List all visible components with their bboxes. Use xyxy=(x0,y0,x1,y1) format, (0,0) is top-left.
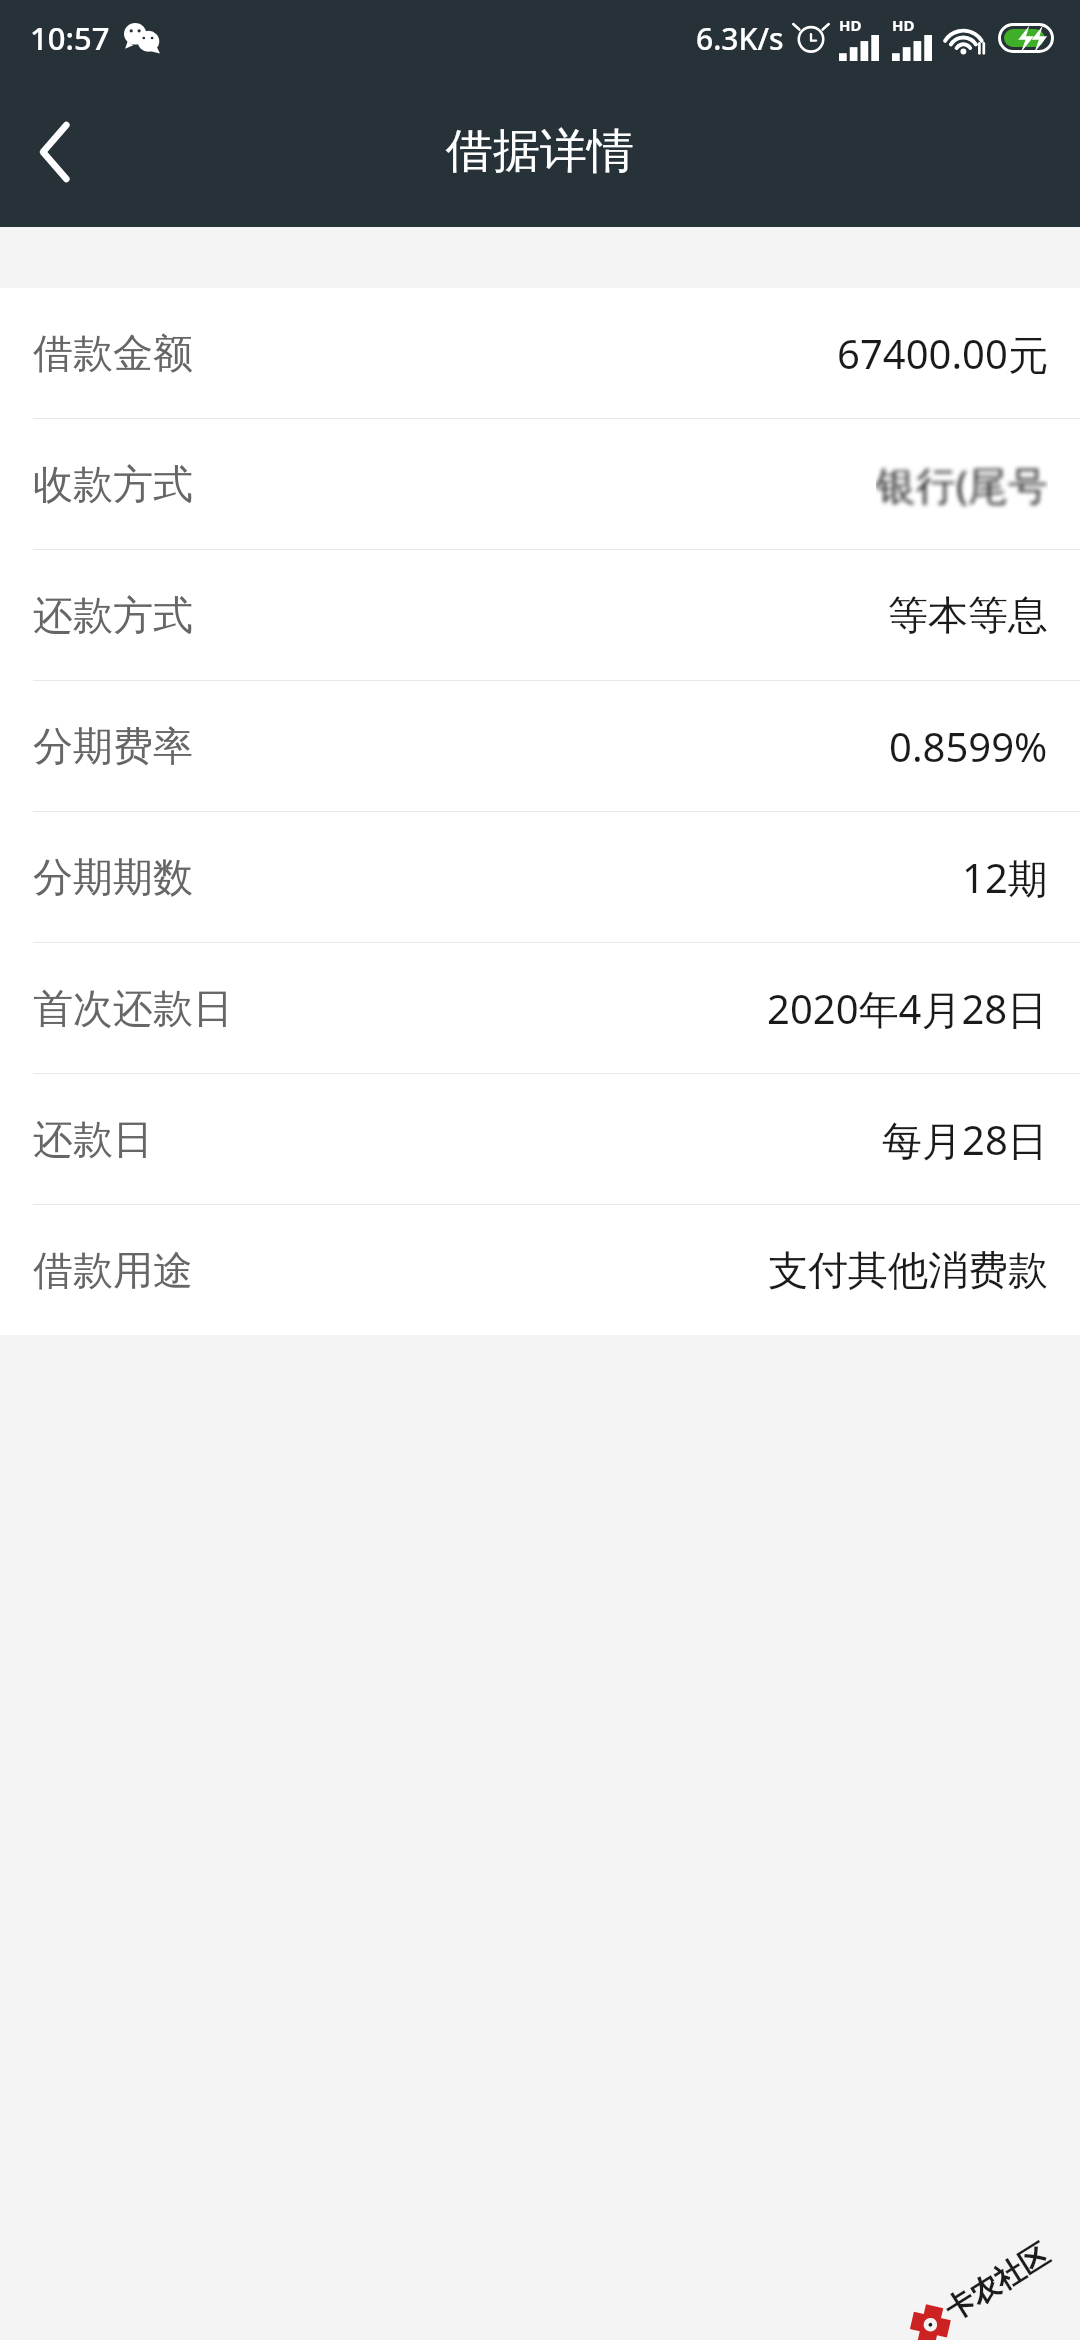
button[interactable]: 返回 xyxy=(0,97,110,207)
staticText: 收款方式 xyxy=(33,459,193,509)
staticText: 0.8599% xyxy=(889,719,1048,773)
button[interactable]: 分期期数 xyxy=(0,812,1080,942)
staticText: 2020年4月28日 xyxy=(767,981,1048,1036)
staticText: 还款方式 xyxy=(33,590,193,640)
button[interactable]: 借款用途 xyxy=(0,1205,1080,1335)
button[interactable]: 还款日 xyxy=(0,1074,1080,1204)
staticText: 12期 xyxy=(962,850,1048,905)
button[interactable]: 分期费率 xyxy=(0,681,1080,811)
staticText: 支付其他消费款 xyxy=(768,1245,1048,1295)
staticText: 借款金额 xyxy=(33,328,193,378)
staticText: HD xyxy=(839,15,862,35)
staticText: 借据详情 xyxy=(446,122,634,181)
button[interactable]: 首次还款日 xyxy=(0,943,1080,1073)
button[interactable]: 收款方式 xyxy=(0,419,1080,549)
staticText: 银行(尾号 xyxy=(876,457,1048,512)
staticText: 借款用途 xyxy=(33,1245,193,1295)
staticText: 10:57 xyxy=(30,17,110,59)
staticText: 分期期数 xyxy=(33,852,193,902)
staticText: 卡农社区 xyxy=(938,2236,1056,2329)
staticText: 还款日 xyxy=(33,1114,153,1164)
staticText: 等本等息 xyxy=(888,590,1048,640)
staticText: 67400.00元 xyxy=(837,326,1048,381)
staticText: 6.3K/s xyxy=(696,18,784,59)
staticText: 分期费率 xyxy=(33,721,193,771)
staticText: 首次还款日 xyxy=(33,983,233,1033)
button[interactable]: 还款方式 xyxy=(0,550,1080,680)
button[interactable]: 借款金额 xyxy=(0,288,1080,418)
staticText: 每月28日 xyxy=(882,1112,1048,1167)
staticText: HD xyxy=(892,15,915,35)
